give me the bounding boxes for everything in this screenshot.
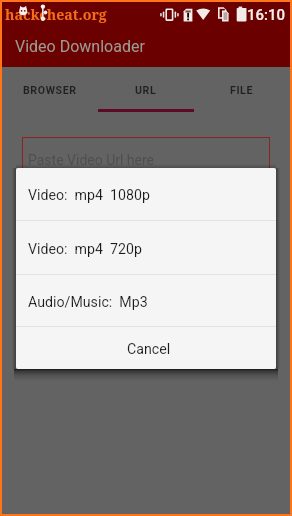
- staticText: Paste Video Url here: [28, 152, 155, 168]
- button[interactable]: URL: [98, 67, 194, 112]
- staticText: Video: mp4 1080p: [28, 187, 150, 204]
- button[interactable]: Audio/Music: Mp3: [16, 275, 276, 326]
- staticText: 16:10: [247, 6, 286, 24]
- button[interactable]: Video: mp4 1080p: [16, 168, 276, 220]
- button[interactable]: Paste Video Url here: [22, 137, 270, 185]
- staticText: Video: mp4 720p: [28, 241, 142, 258]
- button[interactable]: Cancel: [16, 327, 276, 369]
- staticText: FILE: [230, 84, 254, 96]
- staticText: Video Downloader: [15, 37, 145, 56]
- staticText: BROWSER: [23, 84, 77, 96]
- staticText: Cancel: [127, 341, 171, 358]
- staticText: Audio/Music: Mp3: [28, 294, 148, 311]
- button[interactable]: BROWSER: [2, 67, 98, 112]
- button[interactable]: FILE: [194, 67, 290, 112]
- staticText: hackcheat.org: [5, 5, 107, 24]
- staticText: URL: [135, 84, 157, 96]
- button[interactable]: Video: mp4 720p: [16, 221, 276, 274]
